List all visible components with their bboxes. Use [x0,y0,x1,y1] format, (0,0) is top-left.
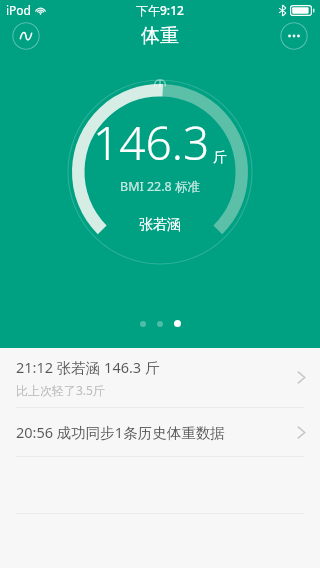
button[interactable]: More options [280,22,308,50]
button[interactable]: 21:12 张若涵 146.3 斤 [0,348,320,407]
staticText: 146.3 [93,111,210,174]
staticText: 21:12 张若涵 146.3 斤 [16,357,160,377]
button[interactable]: 20:56 成功同步1条历史体重数据 [0,408,320,456]
button[interactable]: Weight trend [12,22,40,50]
staticText: 比上次轻了3.5斤 [16,382,105,398]
staticText: iPod [6,2,31,18]
staticText: 张若涵 [139,216,181,234]
staticText: 下午9:12 [136,2,184,18]
staticText: 20:56 成功同步1条历史体重数据 [16,422,297,442]
staticText: BMI 22.8 标准 [120,178,201,195]
staticText: 斤 [213,149,227,167]
staticText: 体重 [141,24,179,48]
